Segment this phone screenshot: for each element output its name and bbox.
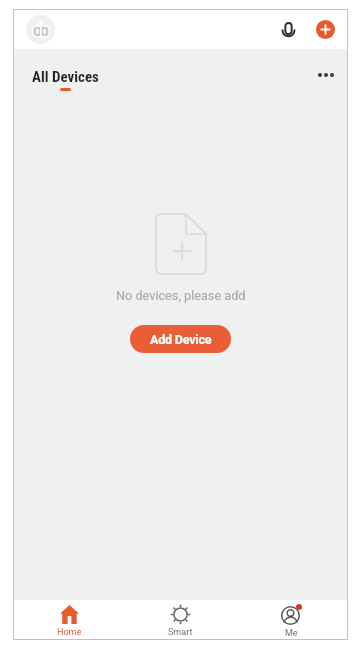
staticText: Smart: [168, 627, 193, 638]
button[interactable]: Home: [14, 601, 125, 638]
button[interactable]: Voice: [275, 17, 301, 43]
button[interactable]: Add device: [316, 20, 335, 39]
staticText: All Devices: [32, 68, 99, 86]
button[interactable]: Me: [236, 600, 347, 639]
button[interactable]: More options: [314, 63, 338, 87]
staticText: Add Device: [150, 332, 212, 347]
staticText: Home: [57, 627, 82, 638]
button[interactable]: Assistant: [26, 15, 55, 44]
button[interactable]: Smart: [125, 601, 236, 638]
button[interactable]: All Devices: [32, 68, 99, 91]
staticText: Me: [285, 628, 298, 639]
button[interactable]: Add Device: [130, 325, 231, 353]
staticText: No devices, please add: [116, 288, 246, 303]
